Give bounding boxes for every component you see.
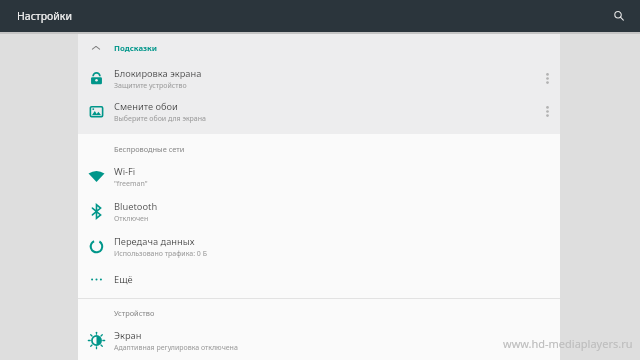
- staticText: Беспроводные сети: [114, 144, 185, 154]
- staticText: Адаптивная регулировка отключена: [114, 343, 238, 353]
- button[interactable]: Смените обои: [78, 95, 560, 128]
- staticText: Передача данных: [114, 235, 195, 248]
- staticText: Подсказки: [114, 43, 158, 54]
- button[interactable]: Блокировка экрана: [78, 62, 560, 95]
- staticText: Wi-Fi: [114, 165, 136, 178]
- button[interactable]: Поиск: [607, 4, 631, 28]
- staticText: Устройство: [114, 308, 155, 318]
- staticText: "freeman": [114, 179, 148, 189]
- button[interactable]: Wi-Fi: [78, 159, 560, 194]
- staticText: Смените обои: [114, 100, 178, 113]
- button[interactable]: Ещё: [78, 264, 560, 295]
- staticText: Защитите устройство: [114, 81, 187, 91]
- button[interactable]: Передача данных: [78, 229, 560, 264]
- button[interactable]: Экран: [78, 323, 560, 358]
- staticText: Настройки: [17, 9, 72, 23]
- staticText: Bluetooth: [114, 200, 158, 213]
- staticText: Отключен: [114, 214, 149, 224]
- staticText: Использовано трафика: 0 Б: [114, 249, 207, 259]
- staticText: Блокировка экрана: [114, 67, 202, 80]
- staticText: Экран: [114, 329, 142, 342]
- staticText: Выберите обои для экрана: [114, 114, 206, 124]
- staticText: Ещё: [114, 273, 133, 286]
- button[interactable]: Bluetooth: [78, 194, 560, 229]
- button[interactable]: Меню: [534, 95, 560, 128]
- staticText: www.hd-mediaplayers.ru: [503, 336, 633, 351]
- button[interactable]: Подсказки: [78, 34, 560, 62]
- button[interactable]: Меню: [534, 62, 560, 95]
